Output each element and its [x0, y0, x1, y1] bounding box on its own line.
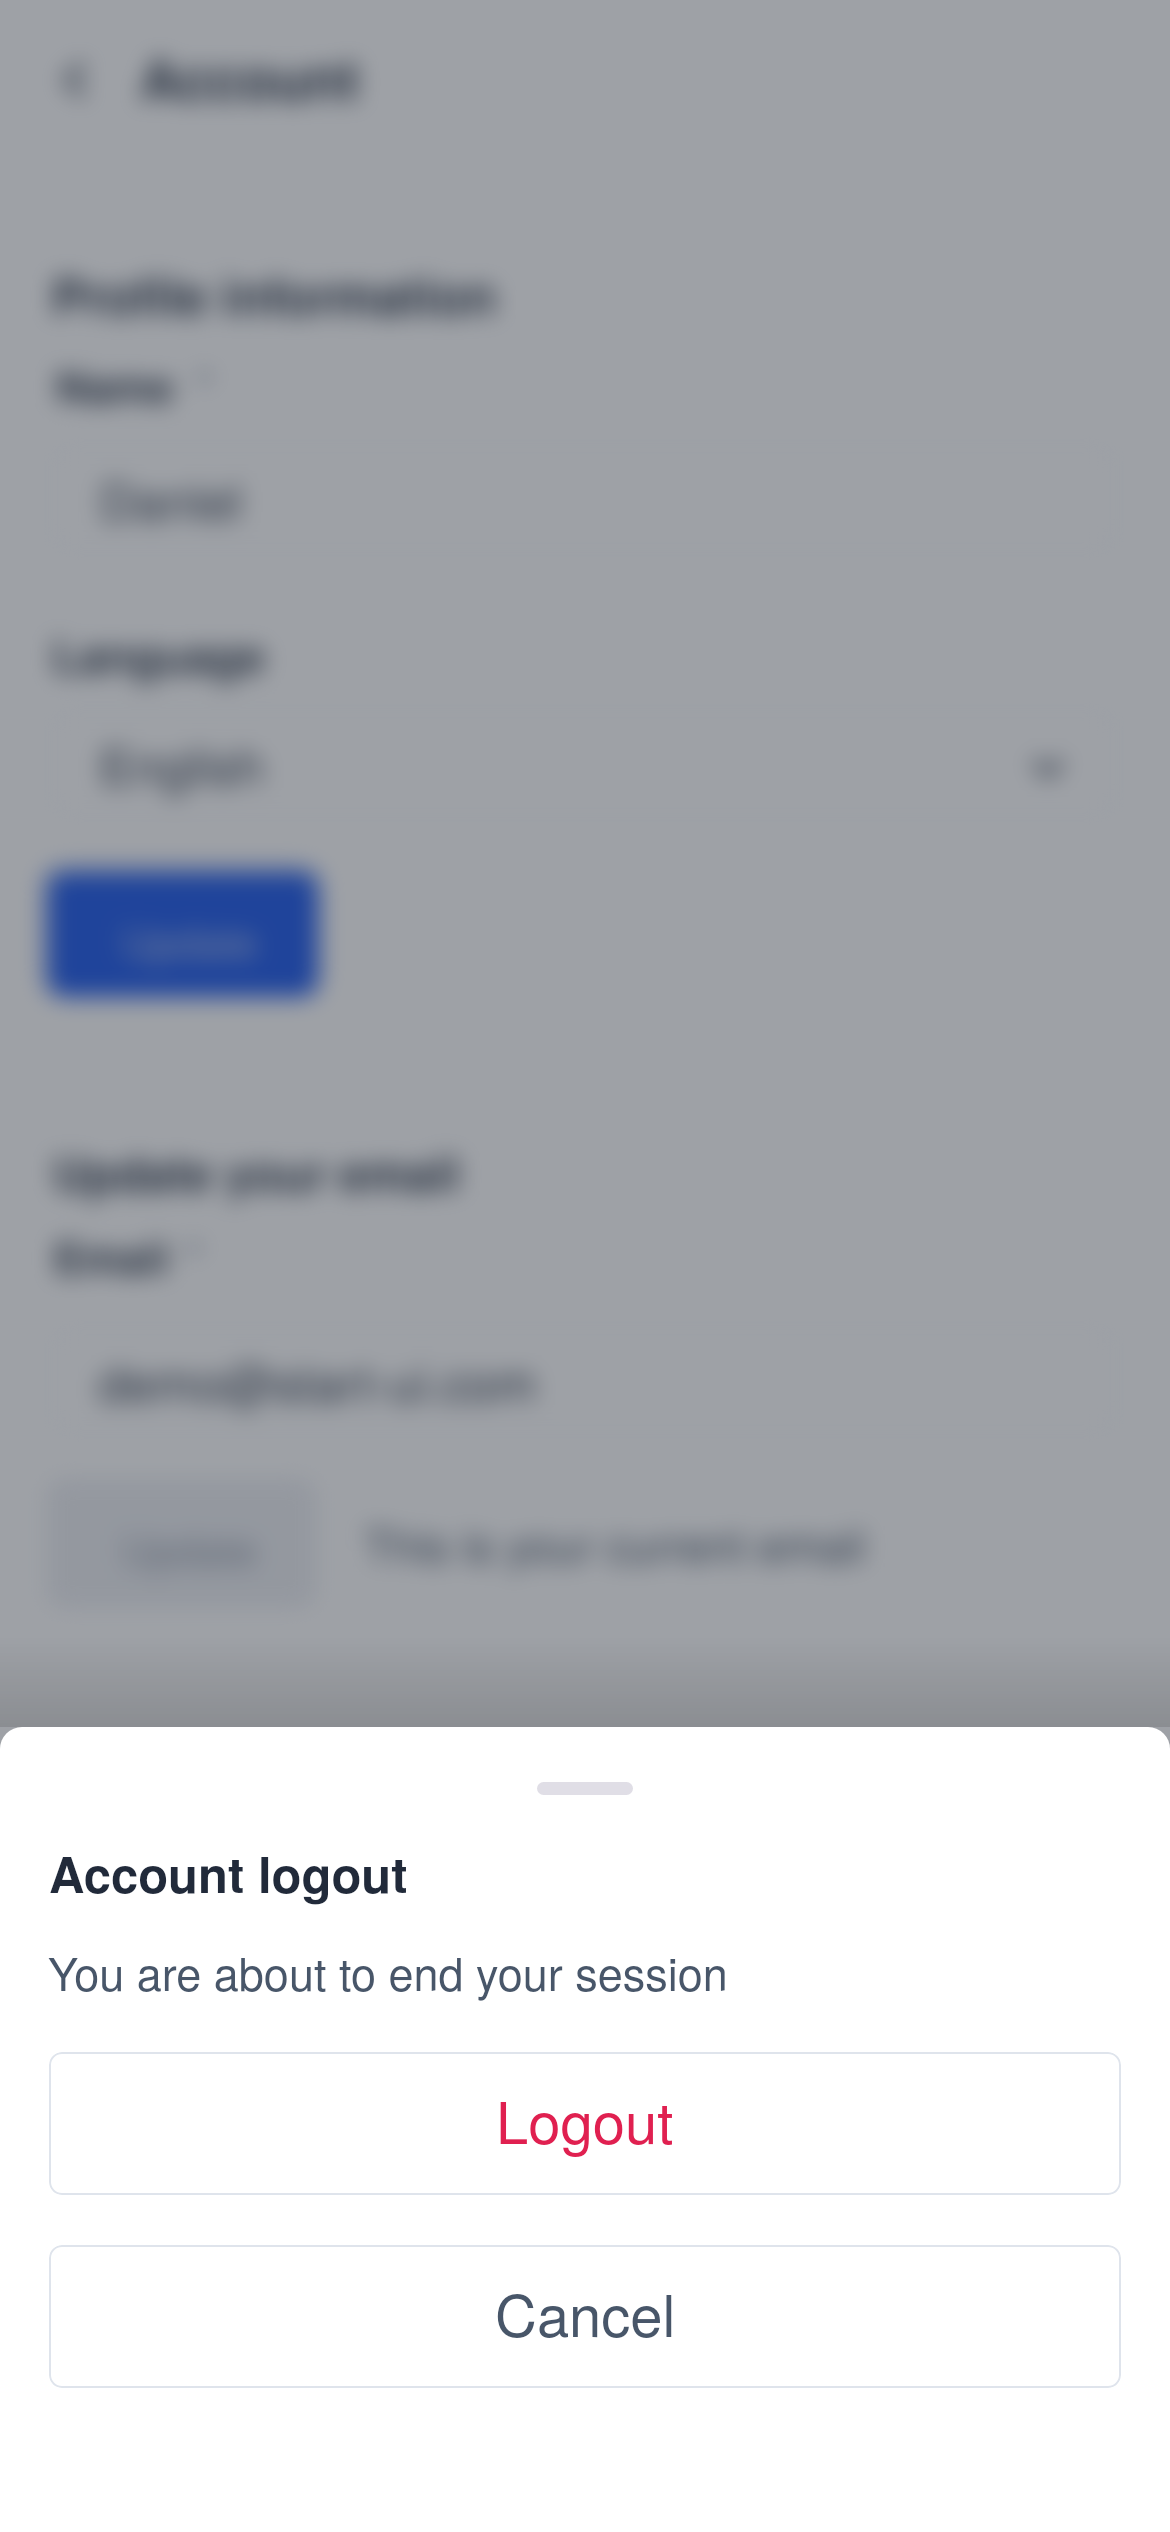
button[interactable]: Close — [0, 0, 1170, 1727]
button[interactable]: Back — [36, 40, 116, 120]
staticText: Cancel — [495, 2270, 676, 2353]
staticText: This is your current email — [364, 1511, 866, 1575]
staticText: Profile information — [52, 259, 496, 331]
button[interactable]: Email field — [50, 1327, 1118, 1433]
staticText: Account — [140, 38, 360, 117]
staticText: You are about to end your session — [48, 1939, 728, 2003]
staticText: Account logout — [49, 1838, 408, 1908]
button[interactable]: Language field — [50, 710, 1118, 816]
staticText: Update — [122, 910, 257, 970]
staticText: Name — [56, 355, 174, 417]
button[interactable]: Name field — [50, 445, 1118, 551]
staticText: Update — [122, 1518, 257, 1578]
staticText: Language — [52, 622, 265, 686]
staticText: English — [100, 728, 264, 800]
button[interactable]: Update — [46, 1478, 317, 1608]
staticText: Logout — [496, 2077, 674, 2160]
other: Drag handle — [537, 1782, 633, 1795]
staticText: Update your email — [53, 1138, 460, 1205]
staticText: demo@start-ui.com — [98, 1345, 537, 1417]
button[interactable]: Update — [50, 874, 317, 997]
staticText: Daniel — [100, 463, 242, 535]
staticText: Email — [54, 1226, 169, 1288]
button[interactable]: Logout — [49, 2052, 1121, 2195]
button[interactable]: Cancel — [49, 2245, 1121, 2388]
